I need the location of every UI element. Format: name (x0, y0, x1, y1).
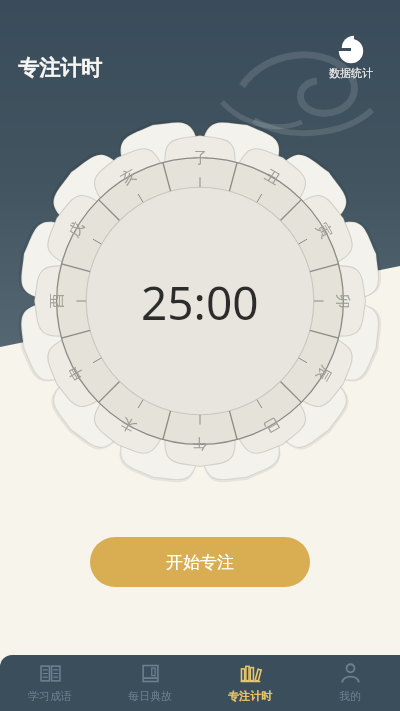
staticText: 未 (118, 412, 140, 436)
staticText: 专注计时 (18, 55, 102, 81)
staticText: 戌 (65, 219, 89, 241)
button[interactable]: 计时表盘 (15, 116, 385, 486)
staticText: 巳 (260, 413, 283, 437)
staticText: 每日典故 (128, 689, 172, 703)
button[interactable]: 学习成语 (0, 655, 100, 711)
staticText: 申 (64, 361, 88, 384)
staticText: 子 (193, 149, 208, 168)
staticText: 数据统计 (316, 66, 386, 80)
staticText: 卯 (333, 294, 352, 309)
staticText: 开始专注 (166, 552, 234, 573)
staticText: 25:00 (141, 271, 259, 334)
button[interactable]: 开始专注 (90, 537, 310, 587)
staticText: 寅 (312, 219, 336, 242)
button[interactable]: 我的 (300, 655, 400, 711)
staticText: 我的 (339, 689, 361, 703)
staticText: 午 (192, 434, 207, 453)
button[interactable]: 数据统计 (316, 37, 386, 80)
button[interactable]: 专注计时 (200, 655, 300, 711)
staticText: 辰 (311, 362, 335, 384)
staticText: 丑 (261, 166, 283, 190)
button[interactable]: 每日典故 (100, 655, 200, 711)
staticText: 亥 (117, 165, 140, 189)
staticText: 学习成语 (28, 689, 72, 703)
staticText: 专注计时 (228, 689, 272, 703)
staticText: 酉 (48, 293, 67, 308)
